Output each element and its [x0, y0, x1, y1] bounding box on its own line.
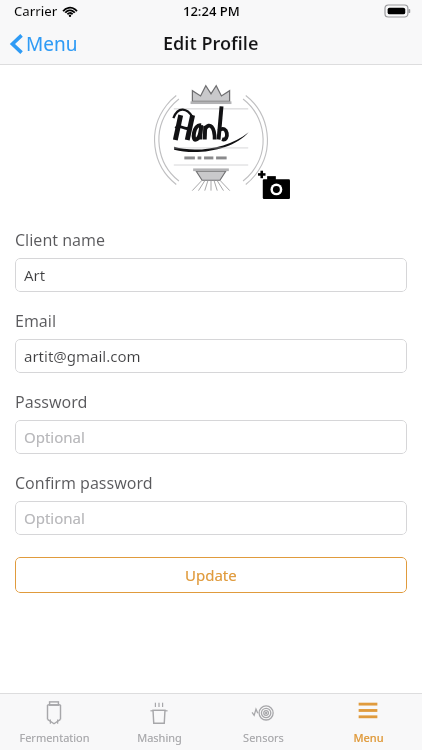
staticText: Menu — [26, 31, 78, 57]
button[interactable]: Sensors — [213, 694, 313, 750]
staticText: Password — [15, 391, 88, 413]
button[interactable]: Optional — [15, 501, 407, 535]
staticText: Edit Profile — [163, 31, 259, 56]
staticText: Sensors — [243, 730, 284, 745]
staticText: Mashing — [137, 730, 182, 745]
button[interactable]: Menu — [318, 694, 418, 750]
button[interactable]: Menu — [0, 27, 88, 61]
button[interactable]: Optional — [15, 420, 407, 454]
button[interactable]: artit@gmail.com — [15, 339, 407, 373]
staticText: Menu — [353, 730, 384, 745]
staticText: Update — [185, 565, 237, 585]
staticText: Optional — [24, 508, 85, 528]
button[interactable]: Art — [15, 258, 407, 292]
button[interactable]: Fermentation — [4, 694, 104, 750]
staticText: Carrier — [14, 2, 58, 20]
staticText: artit@gmail.com — [24, 346, 141, 366]
staticText: Optional — [24, 427, 85, 447]
staticText: Art — [24, 265, 46, 285]
button[interactable]: Update — [15, 557, 407, 593]
button[interactable]: Mashing — [109, 694, 209, 750]
staticText: Confirm password — [15, 472, 153, 494]
button[interactable]: Change profile photo — [257, 169, 291, 203]
staticText: Client name — [15, 229, 106, 251]
staticText: Email — [15, 310, 57, 332]
staticText: 12:24 PM — [183, 2, 240, 20]
staticText: Fermentation — [19, 730, 90, 745]
